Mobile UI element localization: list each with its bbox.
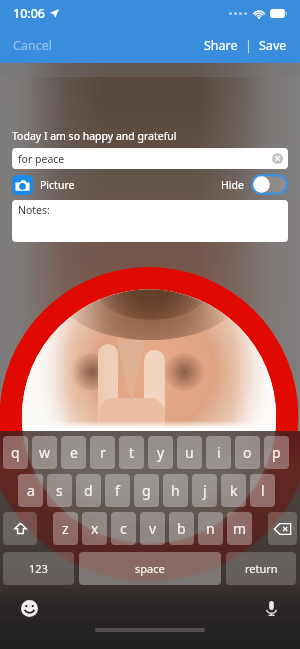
staticText: f	[115, 481, 120, 500]
staticText: 123	[29, 561, 48, 576]
button[interactable]: t	[119, 436, 144, 469]
staticText: |	[245, 37, 252, 54]
staticText: w	[39, 443, 51, 462]
button[interactable]: k	[221, 474, 246, 507]
staticText: Save	[259, 37, 287, 54]
button[interactable]: b	[169, 512, 194, 545]
button[interactable]: u	[177, 436, 202, 469]
staticText: h	[171, 481, 180, 500]
staticText: d	[84, 481, 93, 500]
staticText: Share	[204, 37, 238, 54]
staticText: for peace	[18, 152, 65, 166]
staticText: m	[233, 519, 247, 538]
staticText: c	[120, 519, 127, 538]
staticText: i	[217, 443, 221, 462]
button[interactable]: Cancel	[11, 33, 54, 58]
staticText: p	[272, 443, 281, 462]
button[interactable]: d	[76, 474, 101, 507]
button[interactable]: v	[140, 512, 165, 545]
staticText: q	[11, 443, 20, 462]
button[interactable]: Backspace	[268, 512, 297, 545]
button[interactable]: f	[105, 474, 130, 507]
button[interactable]: l	[250, 474, 275, 507]
staticText: r	[100, 443, 106, 462]
staticText: space	[135, 561, 165, 576]
button[interactable]: g	[134, 474, 159, 507]
button[interactable]: Notes:	[12, 200, 288, 242]
staticText: x	[91, 519, 99, 538]
button[interactable]: y	[148, 436, 173, 469]
button[interactable]: o	[235, 436, 260, 469]
staticText: s	[56, 481, 63, 500]
button[interactable]: c	[111, 512, 136, 545]
staticText: u	[185, 443, 194, 462]
staticText: j	[203, 481, 207, 500]
staticText: Picture	[40, 178, 75, 192]
button[interactable]: space	[79, 552, 221, 585]
staticText: 10:06	[13, 5, 46, 22]
staticText: y	[157, 443, 165, 462]
staticText: v	[149, 519, 157, 538]
button[interactable]: m	[227, 512, 252, 545]
button[interactable]: 123	[3, 552, 74, 585]
staticText: o	[243, 443, 252, 462]
staticText: l	[261, 481, 265, 500]
button[interactable]: Dictate	[260, 597, 282, 619]
button[interactable]: Share	[202, 33, 240, 58]
button[interactable]: r	[90, 436, 115, 469]
button[interactable]: Picture	[12, 175, 75, 195]
staticText: n	[206, 519, 215, 538]
staticText: Notes:	[18, 203, 50, 217]
staticText: t	[129, 443, 135, 462]
button[interactable]: for peace	[12, 148, 288, 169]
button[interactable]: w	[32, 436, 57, 469]
button[interactable]: s	[47, 474, 72, 507]
button[interactable]: p	[264, 436, 289, 469]
button[interactable]: i	[206, 436, 231, 469]
button[interactable]: return	[226, 552, 296, 585]
button[interactable]: a	[18, 474, 43, 507]
staticText: z	[62, 519, 69, 538]
staticText: e	[70, 443, 78, 462]
staticText: return	[245, 561, 278, 576]
button[interactable]: Clear text	[272, 153, 283, 164]
button[interactable]: Shift	[3, 512, 37, 545]
staticText: a	[27, 481, 35, 500]
button[interactable]: Save	[257, 33, 289, 58]
staticText: b	[177, 519, 186, 538]
staticText: Today I am so happy and grateful	[12, 129, 177, 143]
button[interactable]: j	[192, 474, 217, 507]
button[interactable]: n	[198, 512, 223, 545]
button[interactable]: x	[82, 512, 107, 545]
button[interactable]: e	[61, 436, 86, 469]
button[interactable]: Emoji	[18, 597, 40, 619]
button[interactable]: h	[163, 474, 188, 507]
staticText: Hide	[221, 178, 244, 192]
staticText: g	[142, 481, 151, 500]
button[interactable]: Hide	[221, 174, 288, 195]
button[interactable]: z	[53, 512, 78, 545]
button[interactable]: q	[3, 436, 28, 469]
staticText: k	[230, 481, 238, 500]
staticText: Cancel	[13, 37, 52, 54]
